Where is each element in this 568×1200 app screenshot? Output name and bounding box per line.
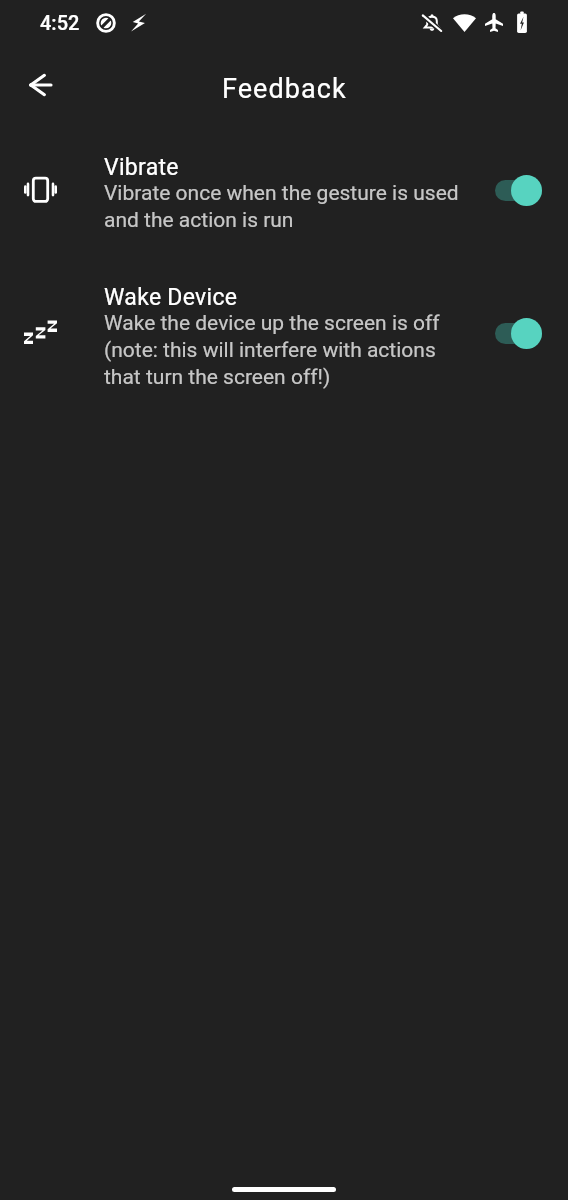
button[interactable]: Toggle [478,313,542,361]
button[interactable]: Vibrate [0,154,568,233]
staticText: Feedback [222,73,347,105]
staticText: Wake the device up the screen is off (no… [104,311,462,390]
button[interactable]: Toggle [478,170,542,218]
staticText: Wake Device [104,284,238,311]
staticText: Vibrate once when the gesture is used an… [104,181,462,233]
staticText: 4:52 [40,11,80,34]
button[interactable]: Wake Device [0,284,568,390]
button[interactable]: Back [8,53,72,117]
staticText: Vibrate [104,154,179,181]
